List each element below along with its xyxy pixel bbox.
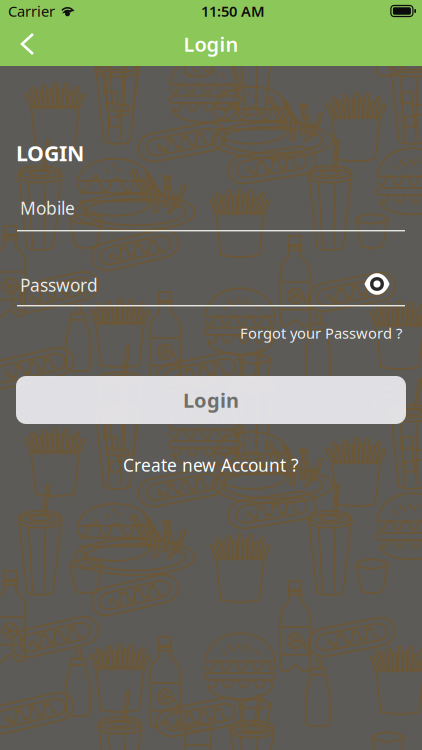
button[interactable]: Login — [16, 376, 406, 424]
staticText: Login — [183, 387, 239, 413]
staticText: Forgot your Password ? — [240, 323, 402, 343]
staticText: Password — [20, 273, 98, 296]
staticText: Carrier — [8, 1, 55, 21]
staticText: LOGIN — [16, 139, 84, 167]
button[interactable]: Forgot your Password ? — [190, 322, 402, 344]
staticText: Create new Account ? — [123, 453, 299, 476]
button[interactable]: Show password — [357, 266, 397, 302]
button[interactable]: Create new Account ? — [0, 453, 422, 477]
staticText: Login — [183, 31, 238, 57]
button[interactable]: Back — [0, 22, 49, 66]
staticText: Mobile — [20, 196, 75, 219]
staticText: 11:50 AM — [201, 1, 265, 21]
